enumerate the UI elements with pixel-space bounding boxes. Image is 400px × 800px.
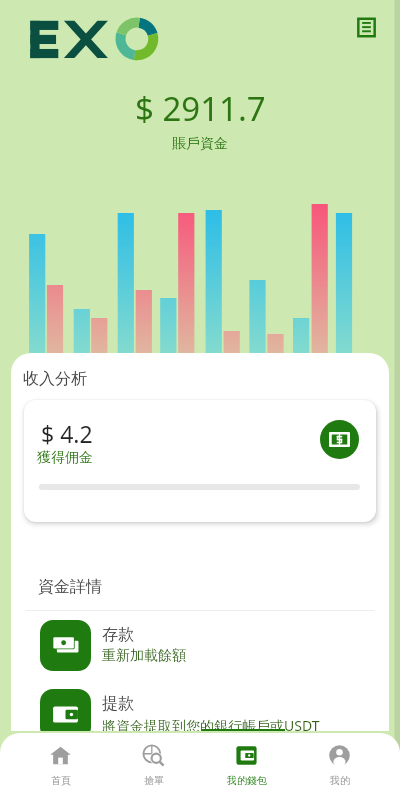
staticText: 我的	[330, 774, 350, 787]
staticText: 收入分析	[23, 369, 87, 389]
button[interactable]: 存款	[11, 615, 389, 675]
staticText: 獲得佣金	[37, 449, 93, 467]
button[interactable]: Transaction records	[351, 12, 381, 42]
staticText: $ 4.2	[41, 418, 93, 449]
other: EXO	[22, 13, 162, 63]
staticText: 搶單	[144, 774, 164, 787]
staticText: 存款	[102, 625, 134, 645]
staticText: 資金詳情	[38, 577, 102, 597]
staticText: 提款	[102, 694, 134, 714]
button[interactable]: 首頁	[14, 733, 107, 795]
button[interactable]: 提款	[11, 684, 389, 731]
staticText: 重新加載餘額	[102, 647, 186, 665]
staticText: 將資金提取到您的銀行帳戶或USDT	[102, 716, 320, 731]
staticText: $ 2911.7	[135, 86, 266, 131]
staticText: 我的錢包	[227, 774, 267, 787]
button[interactable]: 我的錢包	[200, 733, 293, 795]
staticText: 首頁	[51, 774, 71, 787]
button[interactable]: 我的	[293, 733, 386, 795]
staticText: 賬戶資金	[172, 135, 228, 153]
button[interactable]: 搶單	[107, 733, 200, 795]
